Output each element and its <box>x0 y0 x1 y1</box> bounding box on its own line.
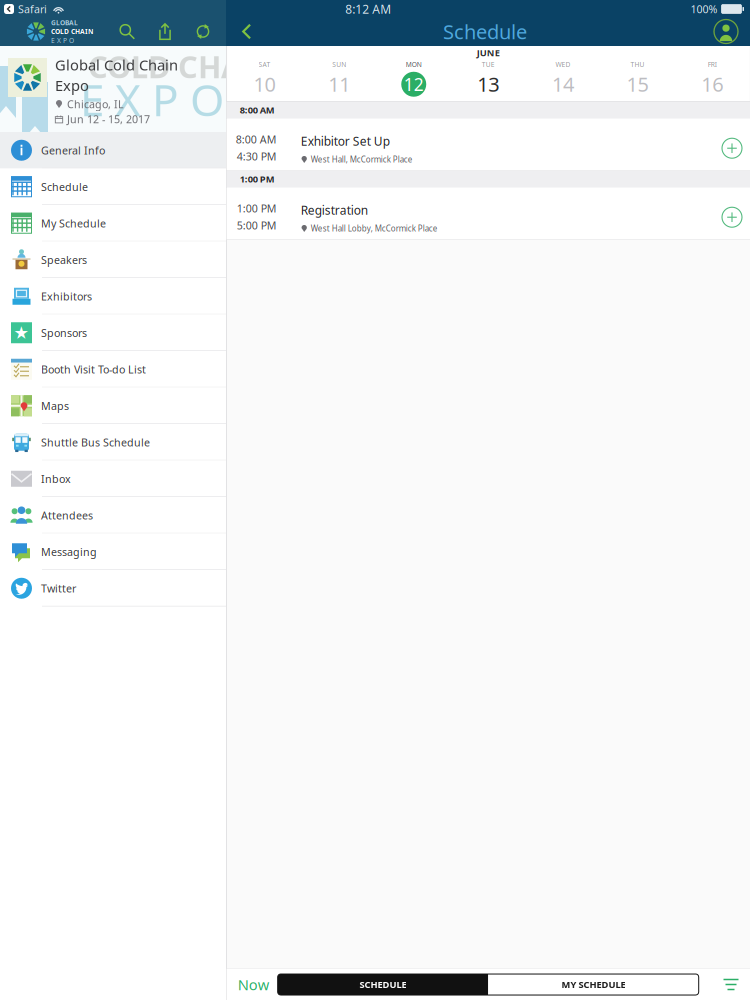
button[interactable]: My Schedule <box>0 205 226 241</box>
button[interactable] <box>376 46 451 100</box>
staticText: WED <box>555 60 570 69</box>
staticText: TUE <box>482 60 495 69</box>
staticText: E X P O <box>80 70 224 128</box>
staticText: Schedule <box>443 18 527 45</box>
staticText: Inbox <box>41 472 71 486</box>
staticText: Messaging <box>41 545 97 559</box>
button[interactable]: Inbox <box>0 460 226 497</box>
staticText: Chicago, IL <box>67 97 124 111</box>
button[interactable]: Now <box>230 969 278 1000</box>
button[interactable]: SCHEDULE <box>278 974 488 995</box>
staticText: SAT <box>258 60 270 69</box>
button[interactable] <box>227 46 302 100</box>
staticText: 1:00 PM <box>240 173 275 185</box>
staticText: GLOBAL <box>51 18 78 27</box>
staticText: 12 <box>404 73 424 96</box>
staticText: Exhibitor Set Up <box>301 133 390 149</box>
button[interactable]: Twitter <box>0 570 226 606</box>
staticText: Registration <box>301 202 368 218</box>
button[interactable]: 8:00 AM <box>227 118 750 170</box>
staticText: COLD CHAIN <box>51 27 93 36</box>
staticText: Schedule <box>41 180 88 194</box>
staticText: General Info <box>41 143 105 157</box>
staticText: Attendees <box>41 508 93 522</box>
staticText: Safari <box>18 2 47 16</box>
staticText: 8:00 AM <box>236 132 277 146</box>
button[interactable] <box>675 46 749 100</box>
staticText: Booth Visit To-do List <box>41 362 146 376</box>
staticText: MON <box>406 60 422 69</box>
staticText: 8:00 AM <box>240 104 275 116</box>
staticText: 1:00 PM <box>237 201 277 215</box>
button[interactable]: Maps <box>0 387 226 424</box>
staticText: 4:30 PM <box>237 149 277 164</box>
staticText: Twitter <box>41 581 76 595</box>
staticText: THU <box>630 60 644 69</box>
staticText: ★ <box>13 323 29 343</box>
staticText: SCHEDULE <box>359 978 406 991</box>
button[interactable]: Attendees <box>0 497 226 533</box>
button[interactable]: MY SCHEDULE <box>488 974 699 995</box>
staticText: West Hall, McCormick Place <box>311 154 413 165</box>
button[interactable]: Refresh <box>184 17 222 45</box>
button[interactable]: ★ <box>0 314 226 351</box>
staticText: Maps <box>41 399 69 413</box>
staticText: FRI <box>708 60 717 69</box>
button[interactable]: Shuttle Bus Schedule <box>0 424 226 460</box>
staticText: Expo <box>55 75 89 95</box>
staticText: 11 <box>328 71 350 97</box>
staticText: E X P O <box>51 36 74 45</box>
staticText: 8:12 AM <box>345 1 391 17</box>
staticText: COLD CHAIN <box>88 46 279 87</box>
staticText: Jun 12 - 15, 2017 <box>67 112 150 126</box>
staticText: 100% <box>690 2 717 16</box>
staticText: SUN <box>332 60 346 69</box>
staticText: Speakers <box>41 253 87 267</box>
staticText: 10 <box>253 71 275 97</box>
button[interactable]: JUNE <box>451 46 526 100</box>
button[interactable]: Schedule <box>0 168 226 205</box>
button[interactable]: Messaging <box>0 533 226 570</box>
staticText: West Hall Lobby, McCormick Place <box>311 223 438 234</box>
staticText: 16 <box>701 71 723 97</box>
staticText: 15 <box>626 71 648 97</box>
staticText: Sponsors <box>41 326 87 340</box>
staticText: 14 <box>552 71 574 97</box>
staticText: 5:00 PM <box>237 218 277 233</box>
button[interactable]: Speakers <box>0 241 226 278</box>
button[interactable]: Booth Visit To-do List <box>0 351 226 387</box>
staticText: Now <box>238 975 270 994</box>
button[interactable]: Back <box>230 17 264 45</box>
button[interactable]: 1:00 PM <box>227 187 750 239</box>
button[interactable]: Exhibitors <box>0 278 226 314</box>
staticText: My Schedule <box>41 216 106 230</box>
staticText: Shuttle Bus Schedule <box>41 435 150 449</box>
button[interactable] <box>526 46 600 100</box>
button[interactable]: Share <box>146 17 184 45</box>
button[interactable]: Search <box>108 17 146 45</box>
button[interactable]: Profile <box>706 17 746 45</box>
button[interactable]: General Info <box>0 132 226 168</box>
staticText: MY SCHEDULE <box>561 978 625 991</box>
staticText: Global Cold Chain <box>55 55 178 74</box>
staticText: JUNE <box>477 46 500 59</box>
staticText: Exhibitors <box>41 289 92 303</box>
button[interactable] <box>302 46 376 100</box>
button[interactable]: Filter <box>712 969 750 1000</box>
staticText: 13 <box>477 71 499 97</box>
button[interactable] <box>600 46 675 100</box>
